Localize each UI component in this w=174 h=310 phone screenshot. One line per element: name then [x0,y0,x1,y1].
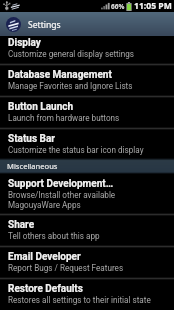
button[interactable]: Share [0,215,174,247]
staticText: MagouyaWare Apps [8,200,81,210]
staticText: Support Development… [8,178,114,190]
staticText: Settings [28,19,61,31]
staticText: Email Developer [8,251,81,263]
button[interactable]: Support Development… [0,174,174,215]
staticText: Browse/Install other available [8,190,116,200]
staticText: Tell others about this app [8,231,100,241]
button[interactable]: Email Developer [0,247,174,279]
staticText: Button Launch [8,101,74,113]
staticText: Restore Defaults [8,283,83,295]
button[interactable]: Button Launch [0,97,174,129]
staticText: Database Management [8,69,112,81]
button[interactable]: Display [0,36,174,65]
staticText: Launch from hardware buttons [8,113,120,123]
staticText: Manage Favorites and Ignore Lists [8,81,133,91]
staticText: Customize general display settings [8,49,135,59]
button[interactable]: Status Bar [0,129,174,159]
staticText: Restores all settings to their initial s… [8,295,151,305]
button[interactable]: Restore Defaults [0,279,174,310]
button[interactable]: Database Management [0,65,174,97]
staticText: Miscellaneous [7,161,58,171]
staticText: Status Bar [8,133,55,145]
staticText: Customize the status bar icon display [8,145,144,155]
staticText: 66% [111,2,125,11]
button[interactable]: Settings [0,12,174,36]
staticText: Share [8,219,35,231]
staticText: Display [8,37,41,49]
staticText: Report Bugs / Request Features [8,263,124,273]
staticText: 11:05 PM [134,0,172,12]
